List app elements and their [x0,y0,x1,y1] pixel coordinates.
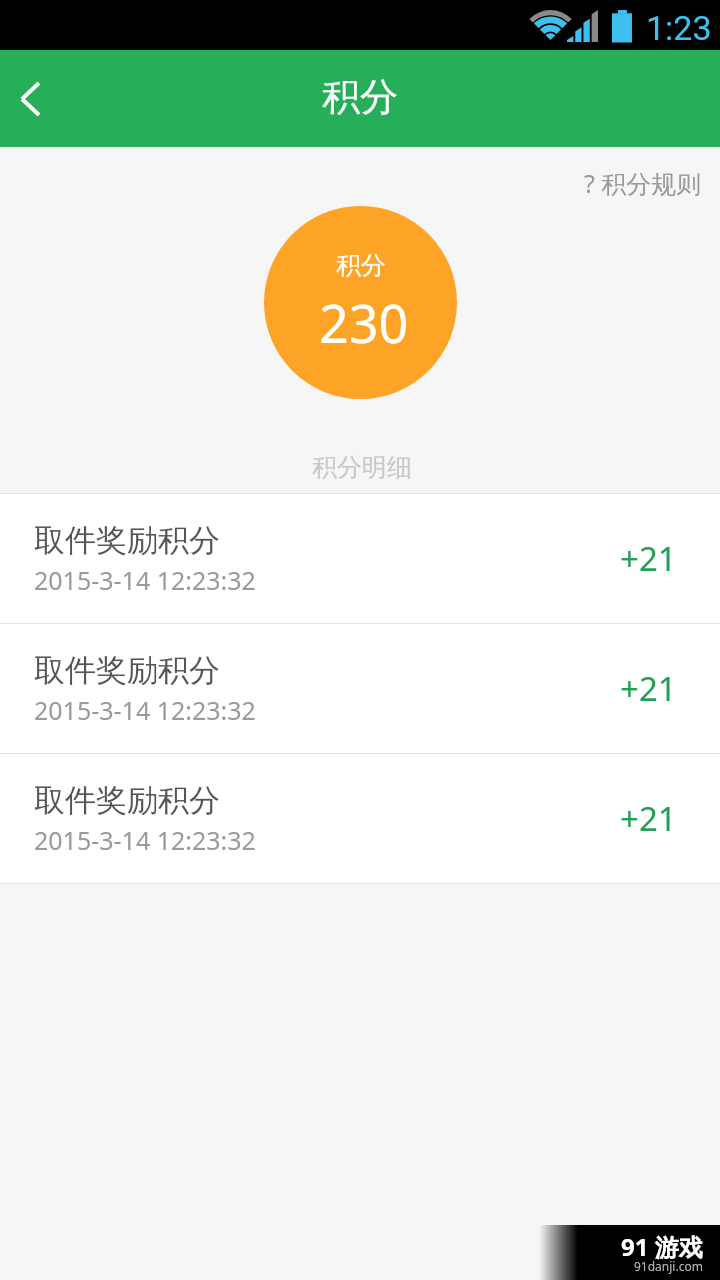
staticText: 积分明细 [312,452,412,483]
staticText: 91danji.com [634,1258,703,1274]
staticText: ? 积分规则 [584,166,702,200]
button[interactable]: 积分 [264,206,457,399]
button[interactable]: 取件奖励积分 [0,754,720,883]
button[interactable]: ? 积分规则 [584,166,702,200]
staticText: 取件奖励积分 [34,651,220,690]
staticText: 取件奖励积分 [34,781,220,820]
staticText: 2015-3-14 12:23:32 [34,693,256,727]
staticText: +21 [620,666,677,711]
button[interactable]: 取件奖励积分 [0,624,720,753]
staticText: +21 [620,536,677,581]
staticText: 取件奖励积分 [34,521,220,560]
staticText: 2015-3-14 12:23:32 [34,823,256,857]
staticText: +21 [620,796,677,841]
button[interactable]: Back [0,50,62,147]
staticText: 91 游戏 [621,1230,703,1263]
button[interactable]: 取件奖励积分 [0,494,720,623]
staticText: 积分 [336,250,386,281]
staticText: 1:23 [646,8,712,48]
staticText: 积分 [322,73,398,121]
staticText: 230 [319,287,409,358]
staticText: 2015-3-14 12:23:32 [34,563,256,597]
